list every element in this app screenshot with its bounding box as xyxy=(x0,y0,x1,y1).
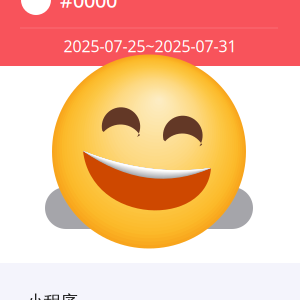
staticText: 小程序 xyxy=(26,291,77,300)
staticText: 2025-07-25~2025-07-31 xyxy=(63,35,236,57)
button[interactable]: #0000 xyxy=(21,0,279,15)
staticText: #0000 xyxy=(60,0,117,13)
